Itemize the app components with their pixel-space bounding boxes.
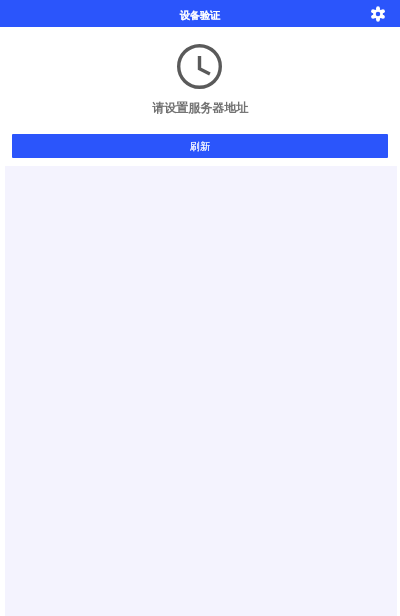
- button[interactable]: Settings: [367, 3, 389, 25]
- staticText: 设备验证: [180, 9, 220, 22]
- staticText: 请设置服务器地址: [152, 100, 248, 115]
- staticText: 刷新: [190, 140, 210, 153]
- button[interactable]: 刷新: [12, 134, 388, 158]
